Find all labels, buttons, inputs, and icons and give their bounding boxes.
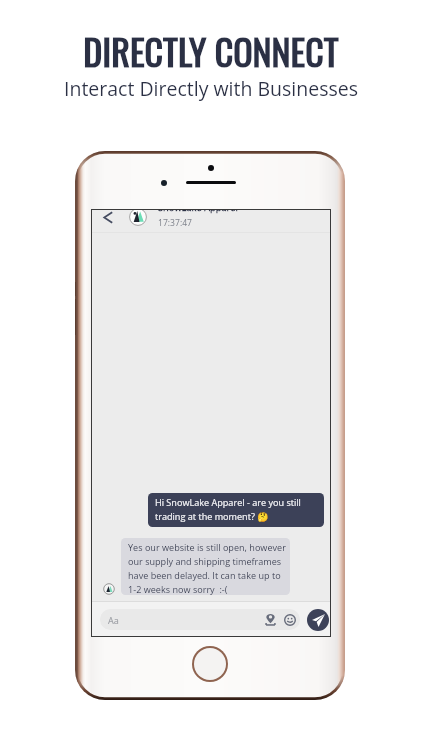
button[interactable]: Location (264, 613, 277, 626)
staticText: Yes our website is still open, however o… (128, 541, 286, 595)
button[interactable]: Emoji (284, 614, 296, 626)
staticText: Aa (108, 614, 119, 626)
button[interactable]: Yes our website is still open, however o… (121, 538, 290, 595)
staticText: SnowLake Apparel (158, 210, 238, 214)
staticText: Hi SnowLake Apparel - are you still trad… (155, 496, 301, 523)
staticText: Interact Directly with Businesses (0, 75, 422, 102)
staticText: 17:37:47 (158, 217, 192, 229)
button[interactable]: Send (307, 609, 329, 631)
staticText: DIRECTLY CONNECT (0, 24, 422, 77)
button[interactable]: Hi SnowLake Apparel - are you still trad… (148, 493, 324, 527)
button[interactable]: Aa (100, 609, 300, 630)
button[interactable]: Back (103, 211, 113, 224)
